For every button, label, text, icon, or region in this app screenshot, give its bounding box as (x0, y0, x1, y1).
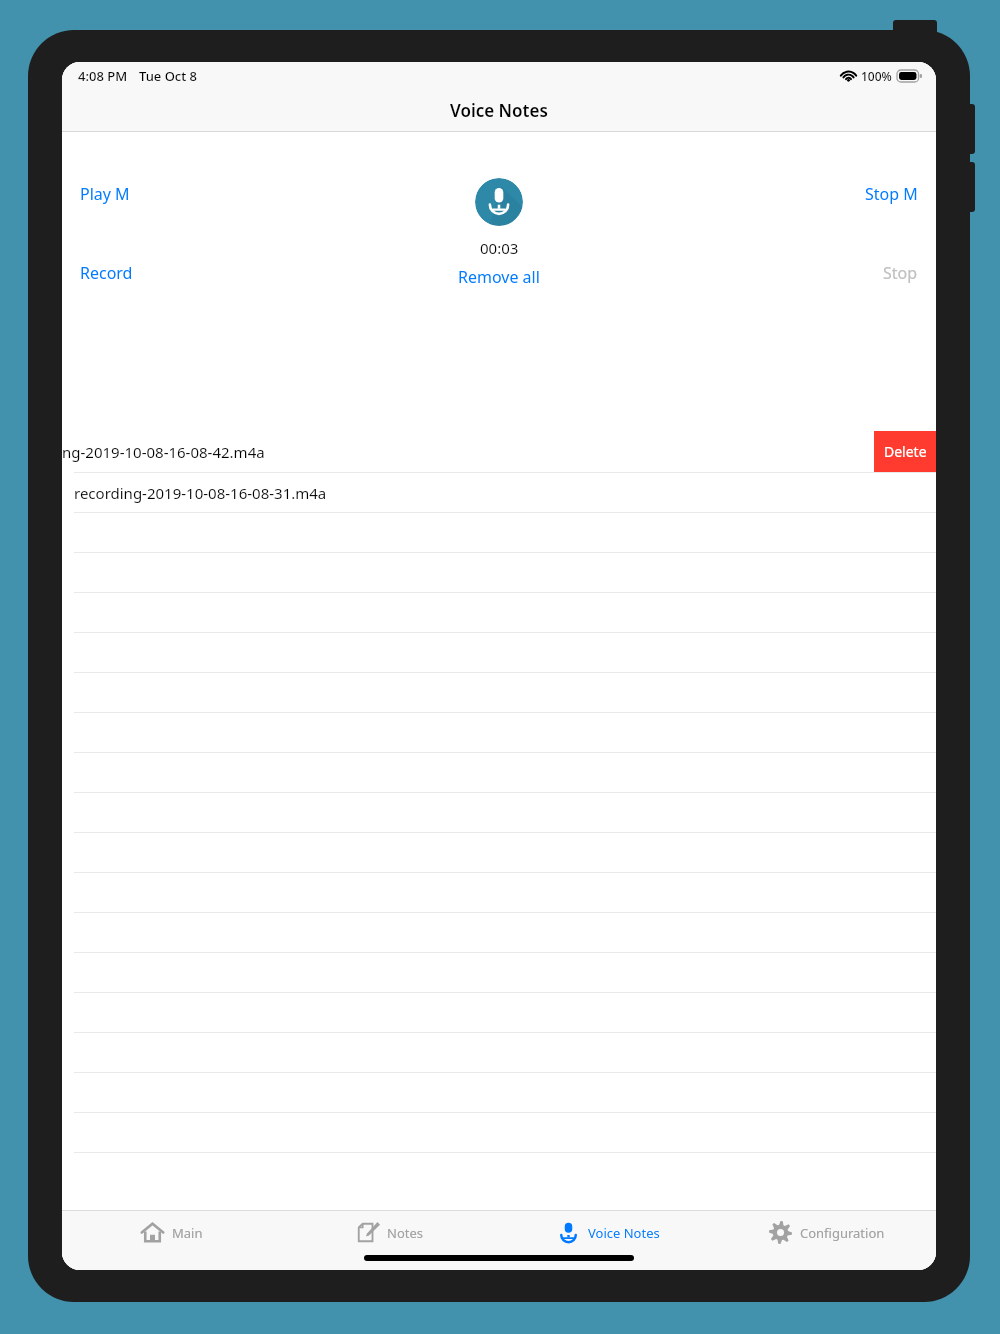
button[interactable]: Voice Notes (498, 1211, 717, 1270)
button[interactable]: Stop M (861, 178, 922, 210)
button[interactable]: ng-2019-10-08-16-08-42.m4a (62, 431, 936, 472)
button[interactable]: Stop (879, 257, 922, 289)
staticText: ng-2019-10-08-16-08-42.m4a (62, 442, 265, 462)
staticText: Play M (80, 183, 130, 205)
button[interactable]: recording-2019-10-08-16-08-31.m4a (62, 473, 936, 512)
staticText: Voice Notes (450, 99, 548, 122)
staticText: 100% (861, 68, 892, 84)
button[interactable]: Play M (76, 178, 134, 210)
button[interactable]: Record (76, 257, 137, 289)
staticText: Delete (884, 442, 927, 461)
staticText: Stop (883, 262, 918, 284)
button[interactable]: Notes (280, 1211, 498, 1270)
button[interactable]: Record voice note (475, 178, 523, 226)
button[interactable]: Remove all (452, 263, 546, 291)
button[interactable]: Main (62, 1211, 280, 1270)
staticText: recording-2019-10-08-16-08-31.m4a (74, 483, 327, 503)
staticText: Record (80, 262, 133, 284)
button[interactable]: Delete (874, 431, 936, 472)
button[interactable]: Configuration (717, 1211, 936, 1270)
staticText: Voice Notes (588, 1224, 660, 1242)
staticText: 4:08 PM (78, 67, 128, 85)
staticText: Remove all (458, 266, 540, 288)
staticText: Notes (387, 1224, 423, 1242)
staticText: 00:03 (480, 238, 519, 258)
staticText: Stop M (865, 183, 918, 205)
staticText: Tue Oct 8 (139, 67, 198, 85)
staticText: Main (172, 1224, 203, 1242)
staticText: Configuration (800, 1224, 885, 1242)
